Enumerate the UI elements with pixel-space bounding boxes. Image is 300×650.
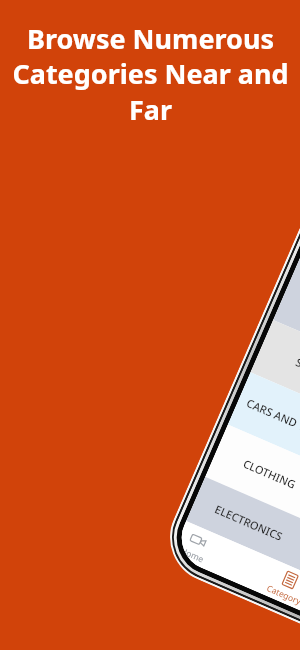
button[interactable]: Category <box>258 559 300 612</box>
staticText: ELECTRONICS <box>213 501 286 544</box>
other: Home <box>188 530 209 551</box>
button[interactable]: ELECTRONICS <box>186 477 300 567</box>
button[interactable]: CLOTHING <box>205 425 300 523</box>
button[interactable]: Home <box>171 521 225 572</box>
staticText: CARS AND TRUCKS <box>244 395 300 448</box>
staticText: Browse Numerous Categories Near and Far <box>12 20 289 128</box>
button[interactable]: CARS AND TRUCKS <box>228 372 300 471</box>
staticText: SPORTS <box>294 354 300 384</box>
button[interactable]: HOME <box>292 523 300 613</box>
staticText: Category <box>265 582 300 608</box>
other: Category <box>280 570 300 591</box>
staticText: Home <box>179 545 206 566</box>
staticText: CLOTHING <box>241 456 298 492</box>
button[interactable]: SPORTS <box>250 320 300 418</box>
